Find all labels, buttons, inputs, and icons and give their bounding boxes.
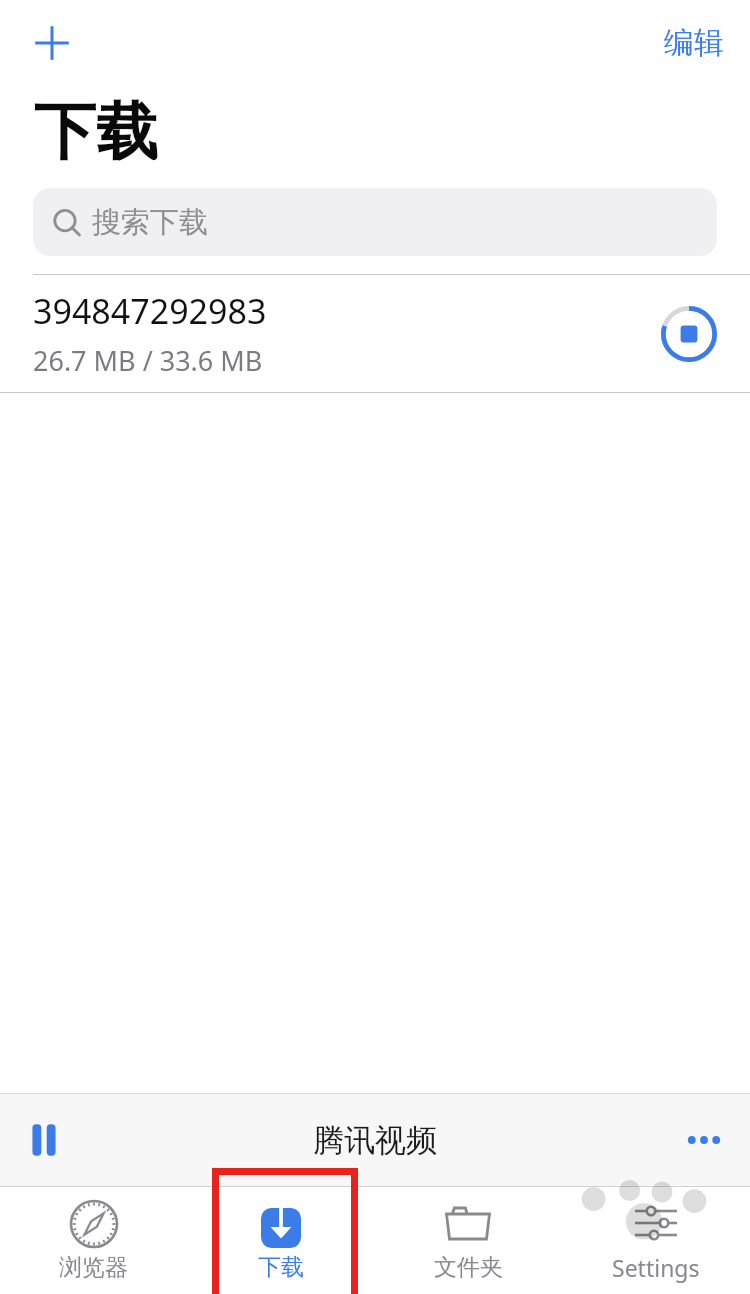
staticText: 编辑 [664,24,724,62]
button[interactable]: 搜索下载 [33,188,717,256]
staticText: 下载 [258,1253,304,1282]
button[interactable]: More options [668,1104,740,1176]
staticText: 浏览器 [59,1253,128,1282]
staticText: 文件夹 [434,1253,503,1282]
button[interactable]: 下载 [187,1193,374,1288]
button[interactable]: 文件夹 [374,1193,562,1288]
staticText: 腾讯视频 [313,1121,437,1160]
button[interactable]: Pause [8,1104,80,1176]
staticText: 26.7 MB / 33.6 MB [33,342,263,379]
button[interactable]: 浏览器 [0,1193,187,1288]
staticText: 394847292983 [33,288,267,334]
button[interactable]: 394847292983 [0,275,750,392]
staticText: 下载 [34,93,158,171]
staticText: Settings [612,1252,700,1283]
button[interactable]: Settings [562,1192,750,1289]
button[interactable]: 编辑 [656,16,732,70]
staticText: 搜索下载 [92,204,208,241]
button[interactable]: Pause download [656,301,722,367]
button[interactable]: Add download [20,11,84,75]
